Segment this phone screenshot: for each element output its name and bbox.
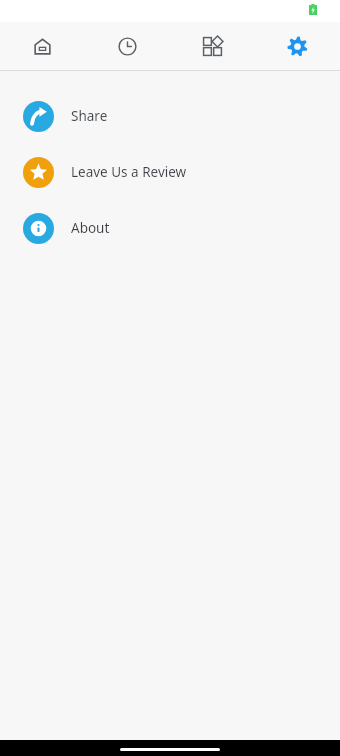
button[interactable]: About	[0, 200, 340, 256]
button[interactable]: Settings	[255, 22, 340, 70]
button[interactable]: Categories	[170, 22, 255, 70]
button[interactable]: History	[85, 22, 170, 70]
button[interactable]: Leave Us a Review	[0, 144, 340, 200]
staticText: Share	[71, 107, 108, 125]
staticText: About	[71, 219, 110, 237]
button[interactable]: Share	[0, 88, 340, 144]
staticText: Leave Us a Review	[71, 163, 187, 181]
button[interactable]: Home	[0, 22, 85, 70]
